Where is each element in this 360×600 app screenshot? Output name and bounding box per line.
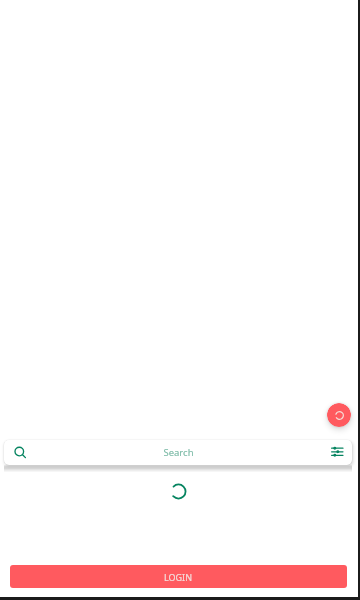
staticText: Search (27, 446, 330, 459)
button[interactable]: Search (4, 440, 352, 465)
button[interactable]: LOGIN (10, 565, 347, 588)
button[interactable]: Refresh (327, 403, 351, 427)
staticText: LOGIN (164, 571, 193, 583)
